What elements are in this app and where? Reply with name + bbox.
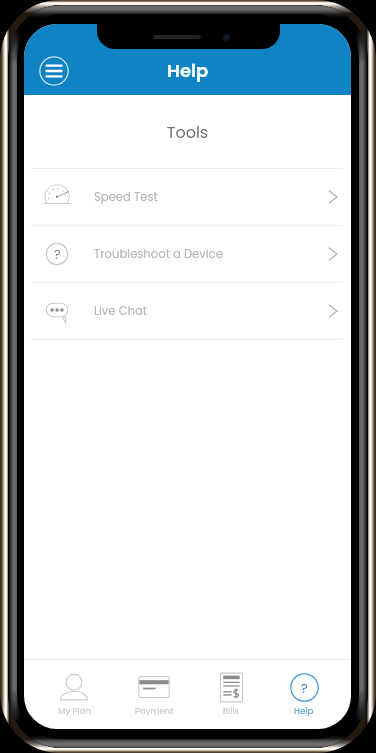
staticText: Tools (24, 121, 351, 143)
staticText: Speed Test (94, 189, 158, 205)
button[interactable]: My Plan (38, 660, 110, 729)
staticText: Help (167, 58, 209, 83)
button[interactable]: Live Chat (24, 283, 351, 339)
button[interactable]: Bills (195, 660, 267, 729)
staticText: Payment (135, 705, 174, 717)
staticText: My Plan (58, 705, 91, 717)
button[interactable]: ? (24, 226, 351, 282)
staticText: ? (301, 679, 308, 697)
staticText: Help (294, 705, 314, 717)
staticText: Troubleshoot a Device (94, 246, 223, 262)
staticText: ? (54, 245, 61, 263)
button[interactable]: Open navigation menu (39, 56, 69, 86)
button[interactable]: ? (268, 660, 340, 729)
staticText: Bills (223, 705, 240, 717)
staticText: Live Chat (94, 303, 148, 319)
button[interactable]: Payment (118, 660, 190, 729)
button[interactable]: Speed Test (24, 169, 351, 225)
